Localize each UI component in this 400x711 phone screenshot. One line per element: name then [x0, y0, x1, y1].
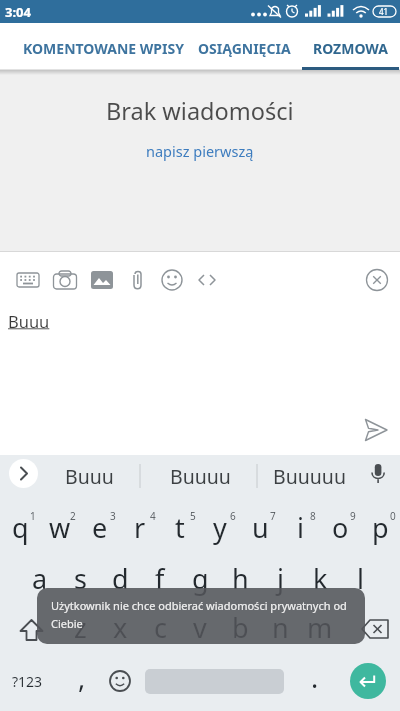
- staticText: s: [74, 560, 87, 597]
- button[interactable]: l: [340, 558, 380, 598]
- button[interactable]: b: [220, 607, 260, 647]
- button[interactable]: m: [300, 607, 340, 647]
- button[interactable]: t: [160, 507, 200, 547]
- button[interactable]: KOMENTOWANE WPISY: [8, 23, 198, 70]
- staticText: 41: [379, 6, 389, 17]
- button[interactable]: f: [140, 558, 180, 598]
- button[interactable]: z: [60, 607, 100, 647]
- staticText: w: [49, 509, 71, 546]
- button[interactable]: o: [320, 507, 360, 547]
- staticText: m: [307, 609, 333, 646]
- staticText: a: [32, 560, 48, 597]
- staticText: p: [372, 509, 389, 546]
- button[interactable]: n: [260, 607, 300, 647]
- button[interactable]: h: [220, 558, 260, 598]
- staticText: Buuu: [8, 310, 50, 332]
- button[interactable]: [87, 265, 117, 295]
- staticText: y: [213, 509, 227, 546]
- staticText: Buuuu: [170, 463, 231, 490]
- button[interactable]: .: [295, 657, 335, 697]
- button[interactable]: x: [100, 607, 140, 647]
- button[interactable]: w: [40, 507, 80, 547]
- staticText: ?123: [12, 672, 43, 691]
- button[interactable]: g: [180, 558, 220, 598]
- staticText: Brak wiadomości: [106, 95, 294, 127]
- staticText: 9: [350, 509, 356, 523]
- button[interactable]: a: [20, 558, 60, 598]
- staticText: OSIĄGNIĘCIA: [198, 39, 291, 58]
- button[interactable]: y: [200, 507, 240, 547]
- button[interactable]: r: [120, 507, 160, 547]
- button[interactable]: d: [100, 558, 140, 598]
- button[interactable]: Buuuu: [150, 455, 250, 497]
- staticText: j: [277, 560, 284, 597]
- button[interactable]: Buuu: [39, 455, 139, 497]
- button[interactable]: j: [260, 558, 300, 598]
- staticText: ,: [78, 659, 86, 696]
- staticText: e: [92, 509, 108, 546]
- staticText: .: [311, 659, 319, 696]
- staticText: Użytkownik nie chce odbierać wiadomości …: [51, 598, 347, 631]
- button[interactable]: [157, 265, 187, 295]
- button[interactable]: u: [240, 507, 280, 547]
- button[interactable]: napisz pierwszą: [146, 141, 254, 161]
- staticText: Buuuuu: [273, 463, 346, 490]
- button[interactable]: [105, 666, 135, 696]
- staticText: f: [155, 560, 165, 597]
- button[interactable]: [6, 609, 56, 649]
- button[interactable]: i: [280, 507, 320, 547]
- button[interactable]: s: [60, 558, 100, 598]
- staticText: ROZMOWA: [313, 39, 389, 58]
- staticText: 1: [30, 509, 36, 523]
- staticText: n: [272, 609, 289, 646]
- button[interactable]: ROZMOWA: [256, 23, 400, 70]
- button[interactable]: [350, 663, 386, 699]
- button[interactable]: c: [140, 607, 180, 647]
- button[interactable]: [13, 265, 43, 295]
- staticText: 8: [310, 509, 316, 523]
- staticText: 3:04: [5, 3, 31, 21]
- button[interactable]: ?123: [2, 661, 52, 701]
- staticText: 7: [270, 509, 276, 523]
- staticText: b: [232, 609, 249, 646]
- staticText: 5: [190, 509, 196, 523]
- button[interactable]: OSIĄGNIĘCIA: [149, 23, 339, 70]
- button[interactable]: e: [80, 507, 120, 547]
- staticText: v: [193, 609, 207, 646]
- button[interactable]: ,: [62, 657, 102, 697]
- button[interactable]: q: [0, 507, 40, 547]
- staticText: z: [74, 609, 87, 646]
- button[interactable]: v: [180, 607, 220, 647]
- button[interactable]: [352, 609, 400, 649]
- staticText: o: [332, 509, 349, 546]
- staticText: KOMENTOWANE WPISY: [23, 39, 184, 58]
- button[interactable]: [9, 459, 38, 488]
- staticText: 4: [150, 509, 156, 523]
- staticText: 3: [110, 509, 116, 523]
- button[interactable]: [356, 410, 396, 450]
- button[interactable]: [362, 265, 392, 295]
- button[interactable]: Buuuuu: [259, 455, 359, 497]
- staticText: q: [12, 509, 29, 546]
- staticText: 0: [390, 509, 396, 523]
- staticText: r: [134, 509, 146, 546]
- staticText: i: [297, 509, 304, 546]
- staticText: u: [252, 509, 269, 546]
- button[interactable]: [50, 265, 80, 295]
- staticText: 6: [230, 509, 236, 523]
- staticText: Buuu: [65, 463, 114, 490]
- staticText: 2: [70, 509, 76, 523]
- staticText: g: [192, 560, 209, 597]
- staticText: h: [232, 560, 249, 597]
- button[interactable]: [123, 265, 153, 295]
- staticText: d: [112, 560, 129, 597]
- staticText: c: [154, 609, 167, 646]
- staticText: k: [313, 560, 328, 597]
- button[interactable]: [192, 265, 222, 295]
- staticText: t: [175, 509, 185, 546]
- staticText: x: [113, 609, 128, 646]
- staticText: l: [357, 560, 364, 597]
- button[interactable]: p: [360, 507, 400, 547]
- button[interactable]: k: [300, 558, 340, 598]
